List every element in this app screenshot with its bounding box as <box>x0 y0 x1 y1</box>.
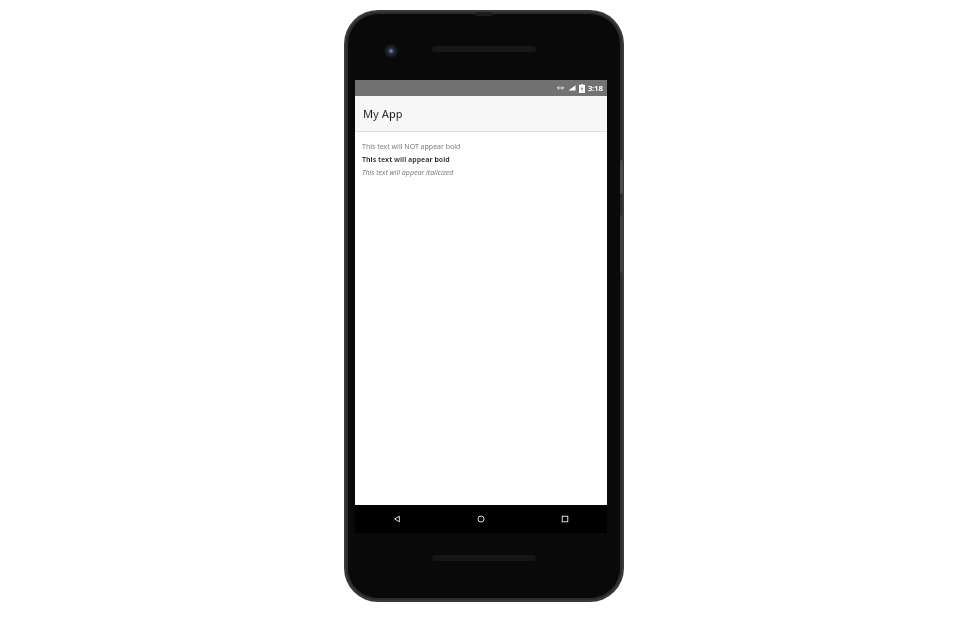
staticText: My App <box>363 106 403 121</box>
staticText: This text will appear bold <box>362 155 450 165</box>
staticText: This text will NOT appear bold <box>362 142 461 152</box>
button[interactable]: My App <box>355 96 607 131</box>
button[interactable]: Back <box>355 505 439 533</box>
button[interactable]: Home <box>439 505 523 533</box>
staticText: 3:18 <box>588 83 603 93</box>
button[interactable]: Recent apps <box>523 505 607 533</box>
staticText: This text will appear italicized <box>362 168 454 178</box>
